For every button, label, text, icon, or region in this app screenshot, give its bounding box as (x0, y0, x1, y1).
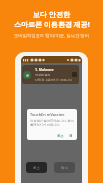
button[interactable]: 1. Malware (22, 65, 79, 84)
staticText: 취소 (33, 166, 40, 170)
staticText: 보다 안전한 (33, 10, 70, 20)
staticText: 확인 (61, 166, 68, 170)
button[interactable]: Expand notification (72, 72, 77, 77)
staticText: 스마트폰 이용환경 제공! (14, 20, 90, 30)
staticText: 악성앱이 발견되었습니다. 확인 후 (30, 119, 74, 127)
staticText: 삭제 후 사용하시기 바랍니다 (35, 78, 72, 82)
button[interactable]: 취소 (26, 162, 47, 173)
button[interactable]: 확인 (54, 162, 75, 173)
button[interactable]: 취소 (56, 133, 65, 139)
staticText: 삭제하시기 바랍니다. (30, 123, 61, 127)
button[interactable]: 예 (68, 133, 74, 139)
staticText: TouchEn mVaccine (30, 112, 65, 117)
staticText: 1. Malware (35, 67, 54, 72)
staticText: 악성앱 발견 (35, 73, 51, 77)
staticText: 모바일악성코드 탐지/치료, 실시간 방어 (14, 32, 89, 38)
